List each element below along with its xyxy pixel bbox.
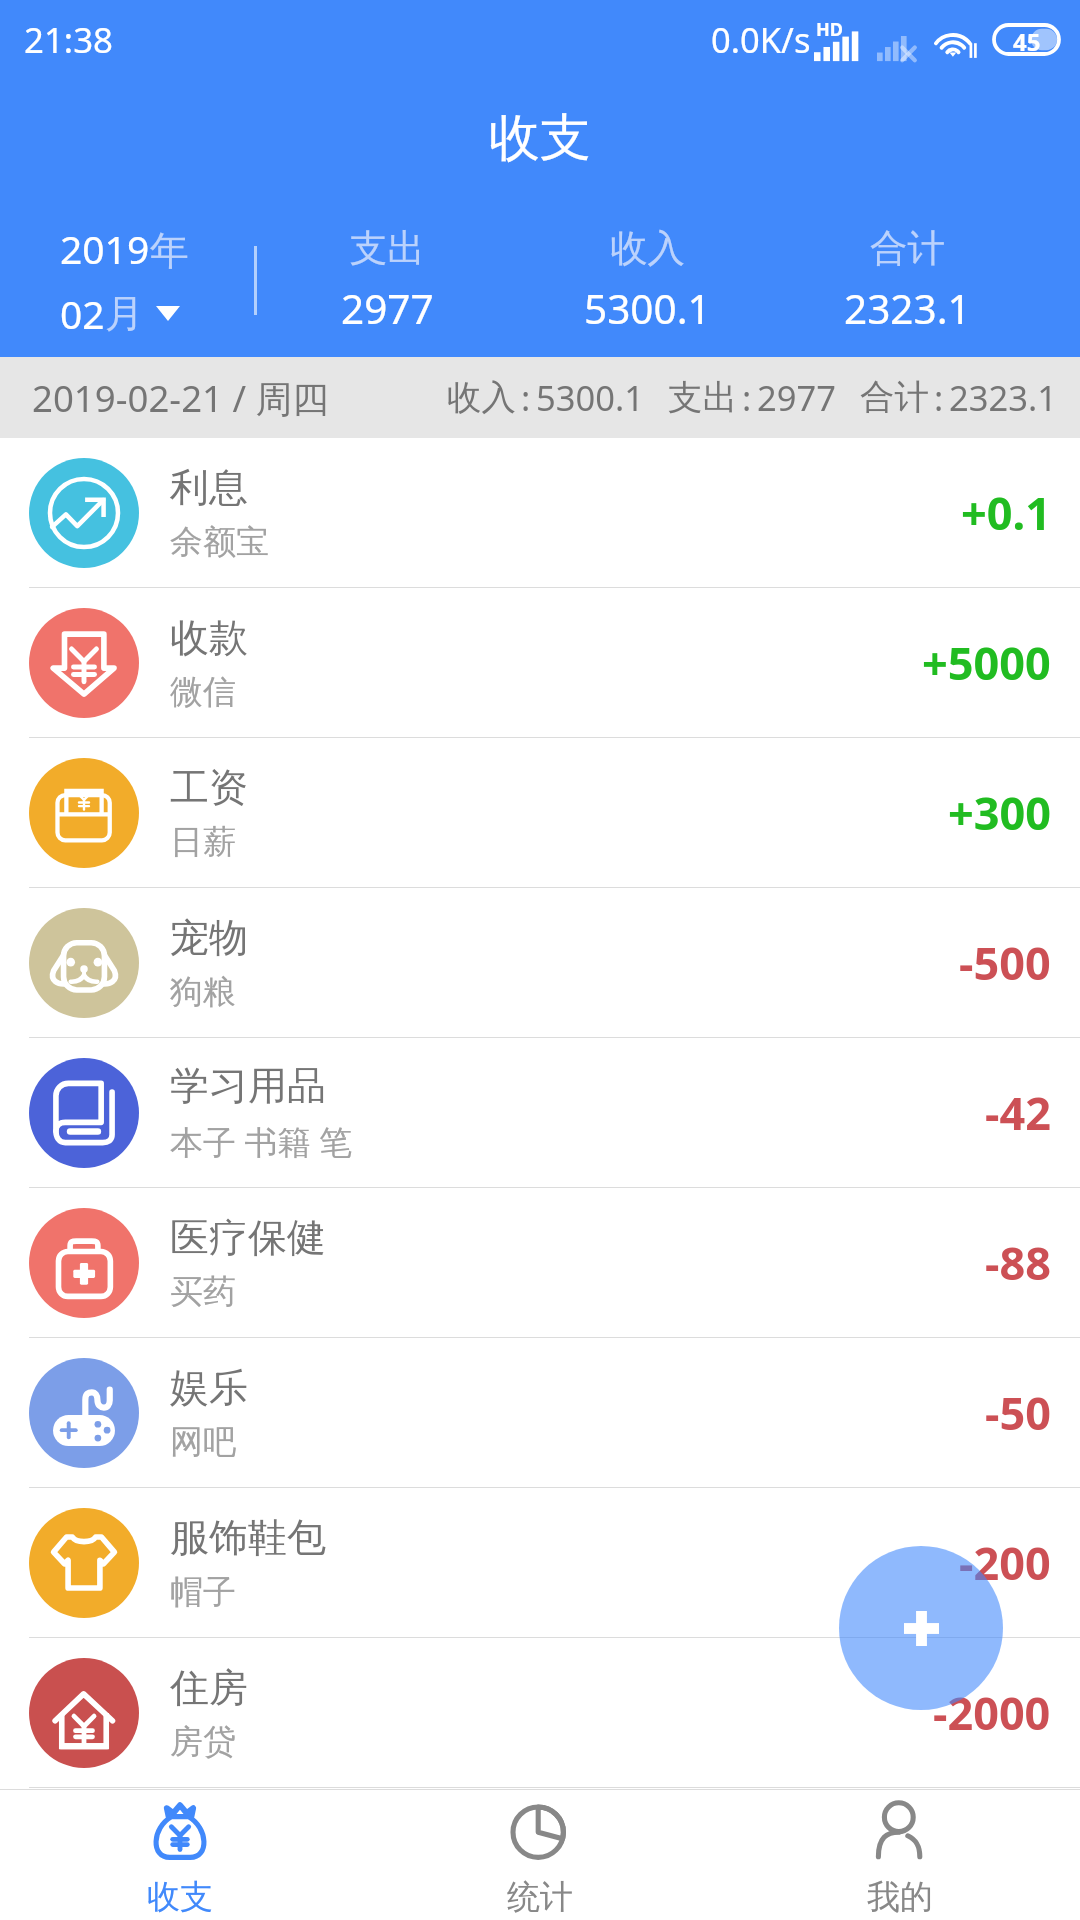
staticText: 0.0K/s: [711, 16, 811, 63]
staticText: -50: [985, 1382, 1051, 1443]
staticText: 我的: [867, 1876, 933, 1918]
staticText: 统计: [507, 1876, 573, 1918]
staticText: 买药: [170, 1271, 236, 1313]
button[interactable]: 学习用品: [0, 1038, 1080, 1188]
staticText: 网吧: [170, 1421, 236, 1463]
staticText: 合计: [860, 376, 929, 419]
button[interactable]: 娱乐: [0, 1338, 1080, 1488]
staticText: 2019: [60, 222, 150, 275]
staticText: 本子 书籍 笔: [170, 1119, 353, 1164]
staticText: 学习用品: [170, 1061, 326, 1110]
button[interactable]: 收支: [0, 1790, 360, 1920]
staticText: 支出: [668, 376, 737, 419]
button[interactable]: 服饰鞋包: [0, 1488, 1080, 1638]
staticText: 狗粮: [170, 971, 236, 1013]
staticText: 日薪: [170, 821, 236, 863]
staticText: +5000: [922, 632, 1051, 693]
button[interactable]: 统计: [360, 1790, 720, 1920]
staticText: 娱乐: [170, 1363, 248, 1412]
staticText: 微信: [170, 671, 236, 713]
staticText: 45: [1013, 25, 1041, 54]
staticText: -42: [985, 1082, 1051, 1143]
staticText: 收款: [170, 613, 248, 662]
staticText: 住房: [170, 1663, 248, 1712]
staticText: 2977: [341, 281, 434, 336]
staticText: 支出: [350, 225, 425, 272]
staticText: 余额宝: [170, 521, 269, 563]
staticText: 5300.1: [584, 281, 711, 336]
staticText: 房贷: [170, 1721, 236, 1763]
staticText: :: [521, 374, 531, 421]
staticText: 月: [105, 289, 144, 338]
button[interactable]: 利息: [0, 438, 1080, 588]
staticText: -2000: [933, 1682, 1051, 1743]
staticText: 年: [150, 226, 189, 275]
button[interactable]: 住房: [0, 1638, 1080, 1788]
staticText: 医疗保健: [170, 1213, 326, 1262]
staticText: 收入: [610, 225, 685, 272]
staticText: +0.1: [961, 482, 1051, 543]
staticText: -200: [959, 1532, 1051, 1593]
staticText: 收支: [489, 106, 591, 170]
staticText: 5300.1: [536, 374, 644, 421]
button[interactable]: 宠物: [0, 888, 1080, 1038]
button[interactable]: Add record: [839, 1546, 1003, 1710]
staticText: 利息: [170, 463, 248, 512]
staticText: 2323.1: [844, 281, 971, 336]
staticText: 工资: [170, 763, 248, 812]
staticText: 2323.1: [949, 374, 1057, 421]
button[interactable]: 我的: [720, 1790, 1080, 1920]
staticText: HD: [816, 17, 843, 42]
button[interactable]: 工资: [0, 738, 1080, 888]
button[interactable]: 收款: [0, 588, 1080, 738]
staticText: 收支: [147, 1876, 213, 1918]
staticText: 21:38: [24, 16, 113, 63]
staticText: 2019-02-21 / 周四: [32, 373, 329, 423]
staticText: -500: [959, 932, 1051, 993]
staticText: 2977: [757, 374, 836, 421]
button[interactable]: 医疗保健: [0, 1188, 1080, 1338]
staticText: 合计: [870, 225, 945, 272]
staticText: 服饰鞋包: [170, 1513, 326, 1562]
staticText: -88: [985, 1232, 1051, 1293]
staticText: :: [934, 374, 944, 421]
staticText: 收入: [447, 376, 516, 419]
staticText: :: [742, 374, 752, 421]
staticText: +300: [948, 782, 1051, 843]
staticText: 帽子: [170, 1571, 236, 1613]
staticText: 宠物: [170, 913, 248, 962]
staticText: 02: [60, 287, 105, 340]
